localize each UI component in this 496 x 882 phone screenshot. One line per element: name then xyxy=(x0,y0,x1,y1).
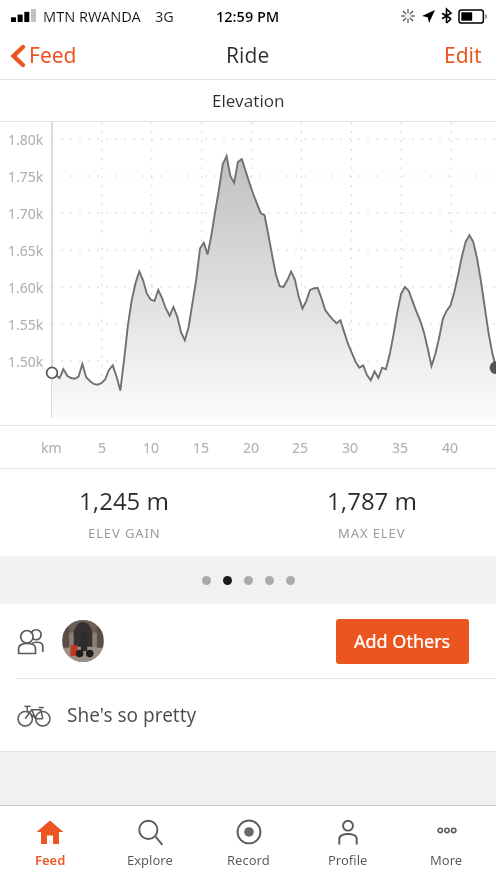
staticText: 1.50k xyxy=(8,352,44,371)
staticText: 1.70k xyxy=(8,204,44,223)
staticText: 5 xyxy=(98,438,107,457)
button[interactable]: Feed xyxy=(0,35,87,76)
staticText: 1,787 m xyxy=(327,484,418,517)
staticText: Explore xyxy=(127,851,173,869)
staticText: Add Others xyxy=(354,629,451,654)
staticText: 35 xyxy=(392,438,409,457)
staticText: She's so pretty xyxy=(67,702,197,728)
staticText: 1,245 m xyxy=(79,484,170,517)
staticText: 1.75k xyxy=(8,167,44,186)
staticText: Feed xyxy=(29,41,77,70)
other: Participants xyxy=(17,629,50,654)
staticText: 20 xyxy=(243,438,260,457)
staticText: 10 xyxy=(143,438,160,457)
staticText: More xyxy=(430,851,463,869)
staticText: MAX ELEV xyxy=(338,524,406,542)
staticText: Record xyxy=(227,851,270,869)
staticText: Ride xyxy=(226,41,270,70)
staticText: Profile xyxy=(328,851,368,869)
button[interactable]: Record xyxy=(199,806,298,882)
staticText: 1.55k xyxy=(8,315,44,334)
button[interactable]: Explore xyxy=(100,806,199,882)
staticText: 1.65k xyxy=(8,241,44,260)
staticText: Elevation xyxy=(212,89,285,112)
staticText: 1.80k xyxy=(8,130,44,149)
button[interactable]: She's so pretty xyxy=(0,679,496,751)
staticText: 12:59 PM xyxy=(216,6,280,26)
staticText: Feed xyxy=(35,851,66,869)
button[interactable]: Add Others xyxy=(336,619,469,664)
staticText: 3G xyxy=(155,6,174,26)
staticText: 30 xyxy=(342,438,359,457)
staticText: 25 xyxy=(292,438,309,457)
button[interactable]: Edit xyxy=(430,33,496,78)
staticText: km xyxy=(41,438,62,457)
staticText: ELEV GAIN xyxy=(88,524,161,542)
button[interactable]: Feed xyxy=(0,806,100,882)
button[interactable]: More xyxy=(397,806,496,882)
staticText: MTN RWANDA xyxy=(43,6,141,26)
staticText: 1.60k xyxy=(8,278,44,297)
staticText: 15 xyxy=(193,438,210,457)
staticText: 40 xyxy=(442,438,459,457)
button[interactable]: Profile xyxy=(298,806,397,882)
